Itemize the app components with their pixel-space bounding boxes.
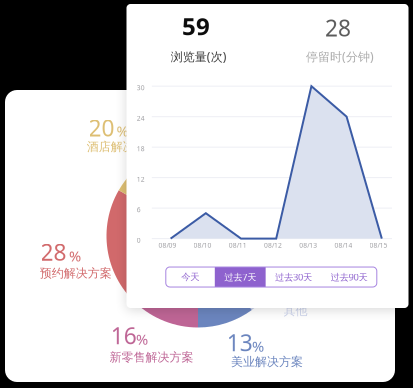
staticText: 13 [227, 327, 253, 357]
staticText: 新零售解决方案 [110, 350, 194, 365]
staticText: 08/12 [264, 241, 282, 250]
staticText: 其他 [283, 303, 307, 318]
staticText: 08/10 [194, 241, 212, 250]
staticText: 0 [137, 236, 141, 245]
staticText: 6 [137, 205, 141, 214]
staticText: % [252, 336, 264, 356]
staticText: 过去90天 [331, 271, 368, 283]
button[interactable]: 过去30天 [266, 267, 321, 287]
staticText: 今天 [181, 271, 199, 283]
staticText: 28 [325, 13, 351, 43]
staticText: 12 [137, 175, 145, 184]
staticText: 59 [182, 10, 210, 42]
staticText: 美业解决方案 [231, 354, 303, 369]
staticText: 08/13 [299, 241, 317, 250]
staticText: 浏览量(次) [171, 48, 227, 64]
staticText: 16 [111, 320, 137, 350]
button[interactable]: 59 [126, 4, 267, 68]
staticText: 28 [40, 237, 66, 267]
staticText: 08/14 [334, 241, 352, 250]
staticText: % [116, 121, 128, 140]
staticText: % [69, 246, 81, 265]
button[interactable]: 过去7天 [215, 267, 266, 287]
button[interactable]: 过去90天 [321, 267, 377, 287]
staticText: 20 [88, 113, 114, 143]
staticText: % [136, 329, 148, 349]
staticText: 30 [137, 83, 145, 92]
staticText: 08/11 [229, 241, 247, 250]
button[interactable]: 今天 [166, 267, 215, 287]
button[interactable]: 28 [267, 4, 408, 68]
staticText: 24 [137, 114, 145, 123]
staticText: 18 [137, 144, 145, 153]
staticText: 预约解决方案 [40, 266, 112, 280]
staticText: 08/09 [158, 241, 176, 250]
staticText: 过去7天 [224, 271, 256, 283]
staticText: 酒店解决方案 [87, 139, 159, 154]
staticText: 停留时(分钟) [306, 48, 374, 64]
staticText: 过去30天 [275, 271, 312, 283]
staticText: 08/15 [370, 241, 388, 250]
